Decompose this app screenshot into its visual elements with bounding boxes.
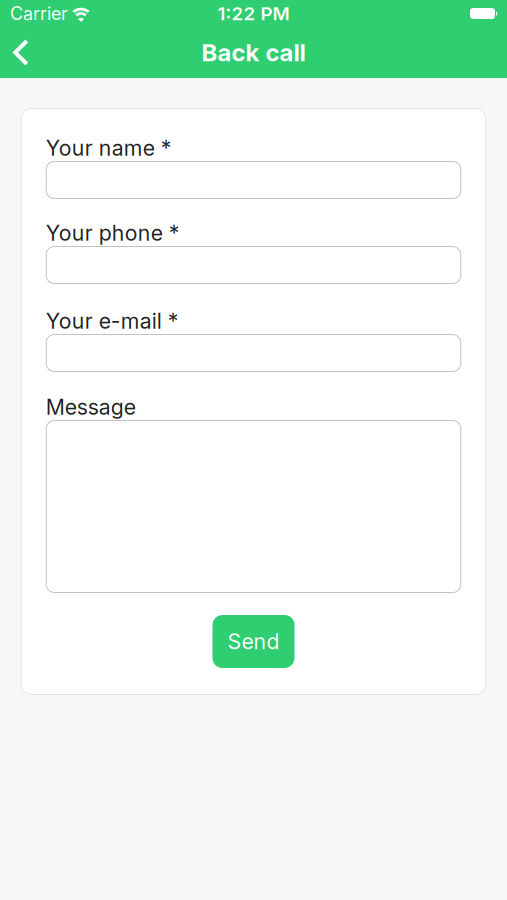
staticText: Send — [227, 629, 279, 654]
staticText: Back call — [201, 38, 305, 67]
staticText: Carrier — [10, 3, 68, 24]
staticText: Your phone * — [46, 220, 180, 246]
button[interactable]: Send — [212, 615, 294, 668]
staticText: 1:22 PM — [217, 2, 289, 25]
staticText: Message — [46, 394, 136, 420]
staticText: Your e-mail * — [46, 308, 179, 334]
staticText: Your name * — [46, 135, 172, 161]
button[interactable]: Back — [0, 27, 42, 78]
